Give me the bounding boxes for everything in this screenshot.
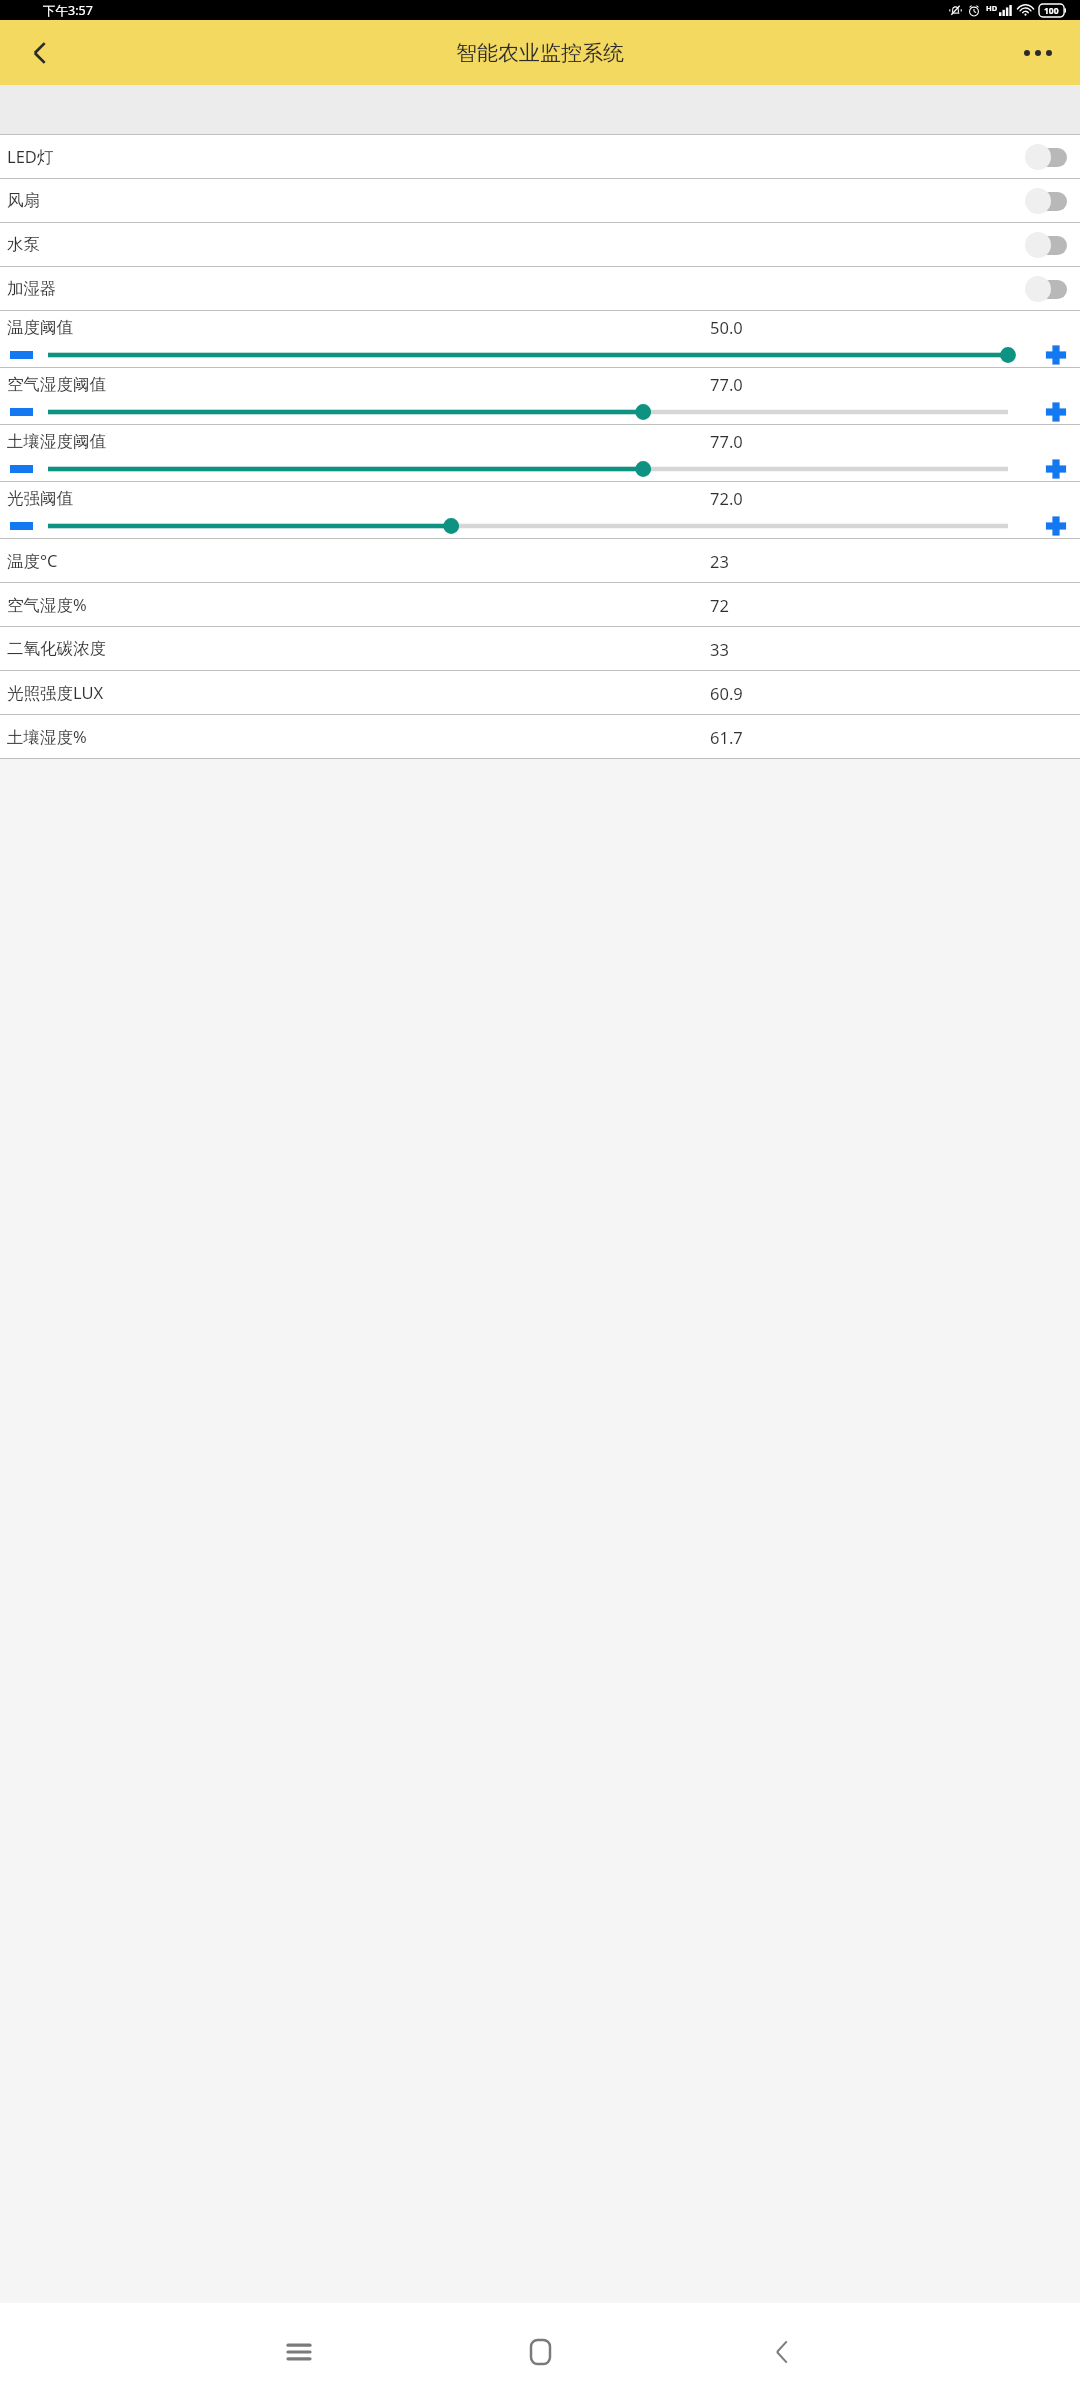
other: 风扇 switch <box>1025 188 1067 214</box>
button[interactable]: Recents <box>273 2326 325 2378</box>
button[interactable]: 空气湿度% <box>0 583 1080 626</box>
button[interactable]: 温度阈值 <box>0 311 1080 367</box>
staticText: 空气湿度% <box>7 593 87 616</box>
staticText: 光强阈值 <box>7 488 73 509</box>
staticText: 水泵 <box>7 234 40 255</box>
button[interactable]: 加湿器 <box>0 267 1080 310</box>
staticText: 二氧化碳浓度 <box>7 638 106 659</box>
staticText: 土壤湿度% <box>7 725 87 748</box>
button[interactable]: 水泵 <box>0 223 1080 266</box>
button[interactable]: Decrease 光强阈值 <box>4 514 38 538</box>
button[interactable]: Back <box>12 25 68 81</box>
button[interactable]: Decrease 空气湿度阈值 <box>4 400 38 424</box>
staticText: LED灯 <box>7 145 54 168</box>
button[interactable]: Increase 空气湿度阈值 <box>1038 400 1074 424</box>
staticText: 72.0 <box>710 487 743 509</box>
button[interactable]: Back <box>755 2326 807 2378</box>
button[interactable]: 风扇 <box>0 179 1080 222</box>
staticText: 50.0 <box>710 316 743 338</box>
other: 加湿器 switch <box>1025 276 1067 302</box>
button[interactable]: Decrease 土壤湿度阈值 <box>4 457 38 481</box>
other: LED灯 switch <box>1025 144 1067 170</box>
button[interactable]: Increase 温度阈值 <box>1038 343 1074 367</box>
staticText: 61.7 <box>710 726 743 748</box>
staticText: 77.0 <box>710 373 743 395</box>
button[interactable]: Increase 土壤湿度阈值 <box>1038 457 1074 481</box>
other: 水泵 switch <box>1025 232 1067 258</box>
button[interactable]: 光照强度LUX <box>0 671 1080 714</box>
button[interactable]: 温度°C <box>0 539 1080 582</box>
staticText: 60.9 <box>710 682 743 704</box>
staticText: 风扇 <box>7 190 40 211</box>
button[interactable]: 二氧化碳浓度 <box>0 627 1080 670</box>
button[interactable]: Home <box>514 2326 566 2378</box>
staticText: 土壤湿度阈值 <box>7 431 106 452</box>
button[interactable]: 空气湿度阈值 <box>0 368 1080 424</box>
staticText: 下午3:57 <box>43 2 93 19</box>
button[interactable]: More options <box>1010 25 1066 81</box>
button[interactable]: LED灯 <box>0 135 1080 178</box>
staticText: 33 <box>710 638 729 660</box>
staticText: 72 <box>710 594 729 616</box>
button[interactable]: 土壤湿度阈值 <box>0 425 1080 481</box>
staticText: 100 <box>1044 5 1059 17</box>
staticText: 光照强度LUX <box>7 681 104 704</box>
staticText: 23 <box>710 550 729 572</box>
button[interactable]: 土壤湿度% <box>0 715 1080 758</box>
staticText: 温度阈值 <box>7 317 73 338</box>
staticText: HD <box>986 3 998 13</box>
staticText: 77.0 <box>710 430 743 452</box>
staticText: 加湿器 <box>7 278 57 299</box>
button[interactable]: Decrease 温度阈值 <box>4 343 38 367</box>
staticText: 温度°C <box>7 549 58 572</box>
button[interactable]: Increase 光强阈值 <box>1038 514 1074 538</box>
staticText: 空气湿度阈值 <box>7 374 106 395</box>
button[interactable]: 光强阈值 <box>0 482 1080 538</box>
staticText: 智能农业监控系统 <box>456 40 624 66</box>
